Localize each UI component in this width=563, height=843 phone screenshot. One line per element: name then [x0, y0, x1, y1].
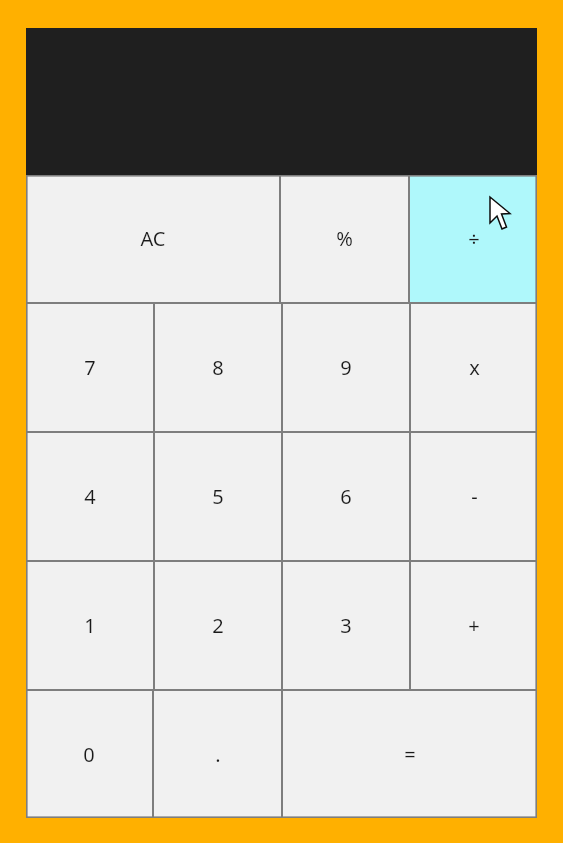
staticText: 4 — [84, 483, 96, 510]
button[interactable]: 0 — [26, 691, 152, 818]
button[interactable]: 5 — [155, 433, 281, 560]
staticText: = — [404, 741, 416, 768]
button[interactable]: 7 — [26, 304, 153, 431]
staticText: + — [468, 612, 480, 639]
button[interactable]: = — [283, 691, 537, 818]
button[interactable]: 9 — [283, 304, 409, 431]
button[interactable]: 2 — [155, 562, 281, 689]
button[interactable]: 6 — [283, 433, 409, 560]
staticText: 5 — [212, 483, 224, 510]
button[interactable]: x — [411, 304, 537, 431]
button[interactable]: 1 — [26, 562, 153, 689]
button[interactable]: - — [411, 433, 537, 560]
staticText: 1 — [84, 612, 96, 639]
staticText: AC — [140, 225, 166, 252]
button[interactable]: . — [154, 691, 281, 818]
button[interactable]: Divide — [410, 175, 537, 302]
staticText: 9 — [340, 354, 352, 381]
staticText: x — [469, 354, 480, 381]
staticText: 2 — [212, 612, 224, 639]
button[interactable]: 4 — [26, 433, 153, 560]
staticText: 8 — [212, 354, 224, 381]
staticText: - — [471, 483, 478, 510]
staticText: 6 — [340, 483, 352, 510]
staticText: ÷ — [468, 225, 480, 252]
staticText: 7 — [84, 354, 96, 381]
staticText: . — [215, 741, 221, 768]
staticText: % — [336, 225, 353, 252]
staticText: 0 — [83, 741, 95, 768]
button[interactable]: AC — [26, 175, 279, 302]
button[interactable]: 8 — [155, 304, 281, 431]
staticText: 3 — [340, 612, 352, 639]
button[interactable]: 3 — [283, 562, 409, 689]
button[interactable]: + — [411, 562, 537, 689]
button[interactable]: % — [281, 175, 408, 302]
